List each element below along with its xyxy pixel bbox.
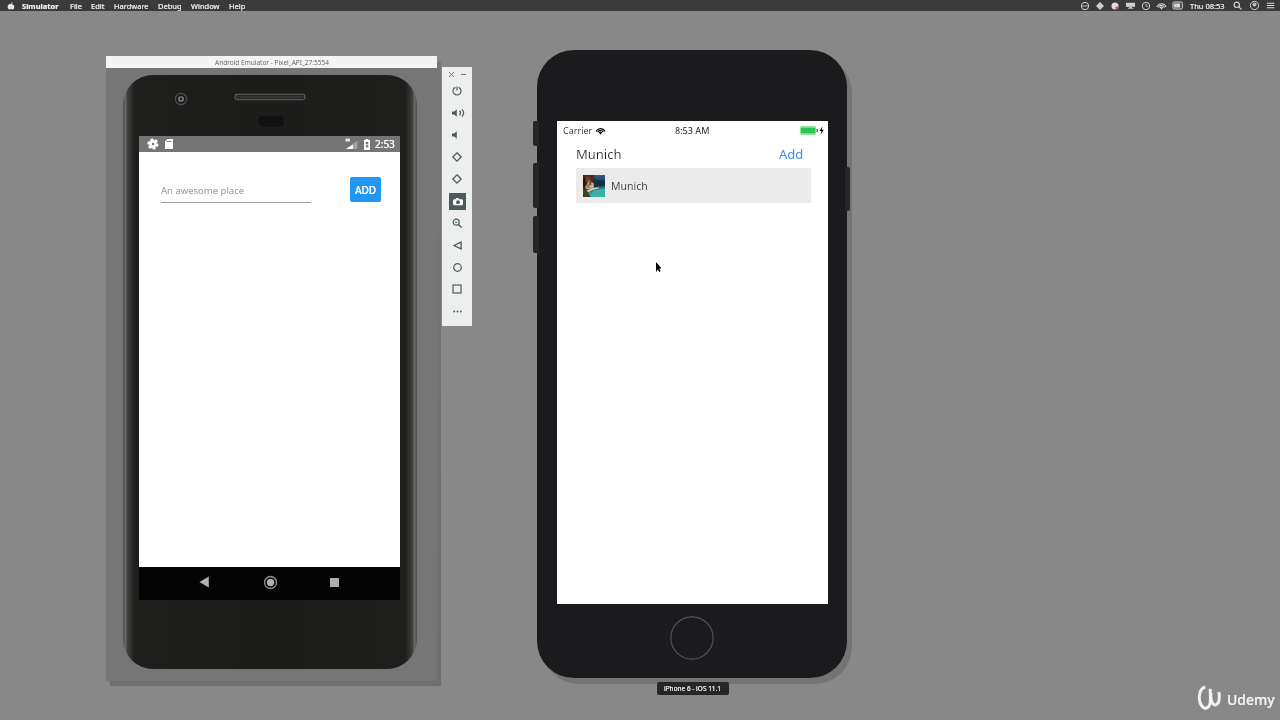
button[interactable]: Minimize bbox=[459, 70, 467, 78]
button[interactable]: Edit bbox=[91, 1, 105, 11]
button[interactable]: Help bbox=[229, 1, 246, 11]
button[interactable]: Home bbox=[446, 256, 468, 278]
button[interactable]: Window bbox=[191, 1, 220, 11]
button[interactable]: ADD bbox=[350, 177, 381, 202]
button[interactable]: Home bbox=[256, 568, 284, 596]
button[interactable]: Volume up bbox=[446, 102, 468, 124]
staticText: Thu 08:53 bbox=[1190, 1, 1225, 11]
button[interactable]: Overview bbox=[446, 278, 468, 300]
staticText: Munich bbox=[576, 145, 622, 163]
button[interactable]: Home bbox=[670, 616, 714, 660]
staticText: Android Emulator - Pixel_API_27:5554 bbox=[215, 58, 329, 67]
staticText: ADD bbox=[355, 183, 377, 197]
button[interactable]: Volume down bbox=[446, 124, 468, 146]
staticText: Hardware bbox=[114, 1, 149, 11]
staticText: iPhone 6 - iOS 11.1 bbox=[664, 684, 722, 693]
button[interactable]: Back bbox=[446, 234, 468, 256]
button[interactable]: Simulator bbox=[22, 1, 59, 11]
staticText: Add bbox=[779, 145, 804, 163]
button[interactable]: Back bbox=[190, 568, 218, 596]
button[interactable]: Zoom bbox=[446, 212, 468, 234]
staticText: Simulator bbox=[22, 1, 59, 11]
button[interactable]: File bbox=[70, 1, 82, 11]
staticText: Udemy bbox=[1227, 690, 1275, 709]
button[interactable]: Screenshot bbox=[446, 190, 468, 212]
button[interactable]: Power bbox=[446, 80, 468, 102]
staticText: Window bbox=[191, 1, 220, 11]
staticText: 8:53 AM bbox=[675, 124, 710, 136]
staticText: Carrier bbox=[563, 124, 593, 136]
button[interactable]: Debug bbox=[158, 1, 182, 11]
staticText: Munich bbox=[611, 179, 648, 193]
staticText: Debug bbox=[158, 1, 182, 11]
staticText: File bbox=[70, 1, 82, 11]
button[interactable]: Close bbox=[447, 70, 455, 78]
button[interactable]: Rotate right bbox=[446, 168, 468, 190]
staticText: Edit bbox=[91, 1, 105, 11]
staticText: An awesome place bbox=[161, 184, 245, 197]
button[interactable]: Recent apps bbox=[320, 568, 348, 596]
button[interactable]: Hardware bbox=[114, 1, 149, 11]
button[interactable]: Add bbox=[779, 145, 804, 163]
button[interactable]: An awesome place bbox=[161, 184, 311, 203]
button[interactable]: Munich bbox=[576, 168, 811, 203]
button[interactable]: More bbox=[446, 300, 468, 322]
button[interactable]: Rotate left bbox=[446, 146, 468, 168]
staticText: Help bbox=[229, 1, 246, 11]
staticText: 2:53 bbox=[375, 137, 395, 151]
